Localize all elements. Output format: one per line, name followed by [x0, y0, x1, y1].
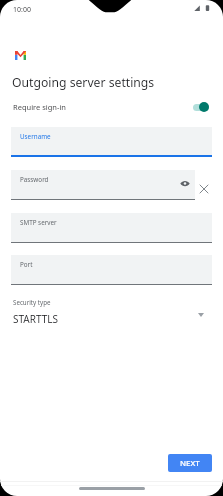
staticText: Security type: [13, 298, 51, 306]
staticText: Require sign-in: [13, 102, 66, 112]
button[interactable]: Require sign-in: [193, 101, 210, 113]
staticText: STARTTLS: [13, 312, 59, 326]
staticText: Outgoing server settings: [12, 74, 155, 91]
button[interactable]: Clear password: [196, 181, 212, 197]
button[interactable]: NEXT: [168, 454, 212, 472]
button[interactable]: Require sign-in: [0, 97, 223, 116]
button[interactable]: Username: [11, 127, 212, 157]
button[interactable]: Port: [11, 255, 212, 285]
button[interactable]: Security type: [0, 296, 223, 328]
staticText: Username: [20, 132, 51, 141]
staticText: NEXT: [180, 458, 200, 469]
staticText: SMTP server: [20, 218, 57, 227]
button[interactable]: SMTP server: [11, 213, 212, 243]
staticText: Port: [20, 260, 33, 269]
button[interactable]: Show password: [178, 177, 191, 190]
staticText: Password: [20, 175, 49, 184]
button[interactable]: Password: [11, 170, 195, 200]
staticText: 10:00: [13, 5, 31, 15]
